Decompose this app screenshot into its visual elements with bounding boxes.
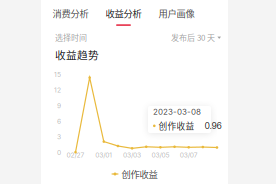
staticText: 收益趋势 <box>55 47 99 62</box>
staticText: 2023-03-08 <box>153 107 201 117</box>
staticText: 收益分析 <box>105 6 141 20</box>
staticText: 创作收益 <box>159 120 195 132</box>
staticText: 9 <box>57 102 61 110</box>
button[interactable]: 发布后 30 天 <box>171 31 221 43</box>
staticText: 12 <box>54 86 61 94</box>
button[interactable]: 收益分析 <box>105 0 141 27</box>
staticText: 0.96 <box>205 121 222 131</box>
staticText: 03/01 <box>95 151 112 159</box>
staticText: 选择时间 <box>55 31 87 43</box>
button[interactable]: 消费分析 <box>52 0 88 27</box>
staticText: 03/05 <box>151 151 169 159</box>
staticText: 消费分析 <box>52 6 88 20</box>
button[interactable]: 选择时间 <box>55 31 87 43</box>
staticText: 6 <box>57 117 61 125</box>
staticText: 3 <box>57 133 61 141</box>
staticText: 用户画像 <box>158 6 194 20</box>
staticText: 02/27 <box>66 151 84 159</box>
staticText: 03/03 <box>123 151 141 159</box>
staticText: 03/07 <box>180 151 198 159</box>
staticText: 创作收益 <box>121 167 157 181</box>
button[interactable]: 用户画像 <box>158 0 194 27</box>
staticText: 0 <box>57 148 61 157</box>
staticText: 15 <box>54 70 61 79</box>
staticText: 发布后 30 天 <box>171 31 215 43</box>
